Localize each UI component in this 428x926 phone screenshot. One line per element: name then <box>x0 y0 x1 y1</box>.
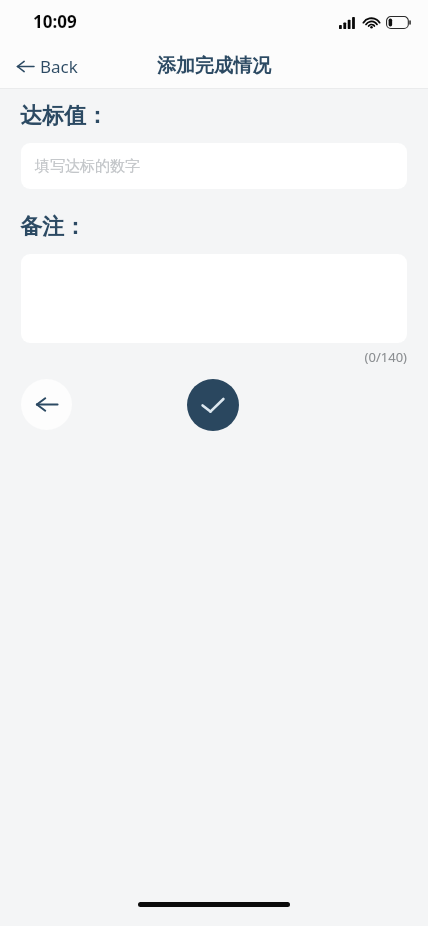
staticText: 填写达标的数字 <box>35 157 140 176</box>
button[interactable]: 填写达标的数字 <box>21 143 407 189</box>
staticText: 添加完成情况 <box>157 54 271 78</box>
staticText: 10:09 <box>33 10 77 33</box>
button[interactable]: Back <box>21 379 72 430</box>
button[interactable]: Back <box>14 49 81 84</box>
staticText: 备注： <box>20 213 86 241</box>
staticText: (0/140) <box>0 348 407 366</box>
staticText: 达标值： <box>20 102 108 130</box>
button[interactable]: Confirm <box>187 379 239 431</box>
staticText: Back <box>40 55 78 78</box>
